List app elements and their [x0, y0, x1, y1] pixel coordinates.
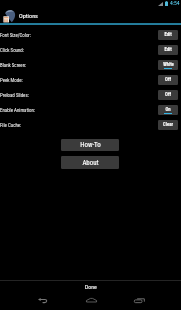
button[interactable]: Edit: [158, 30, 178, 40]
staticText: Click Sound:: [0, 47, 24, 53]
staticText: Options: [19, 12, 38, 19]
button[interactable]: Done: [0, 280, 181, 294]
staticText: Off: [165, 77, 171, 83]
staticText: About: [82, 159, 99, 167]
button[interactable]: Enable Animation:: [0, 102, 181, 117]
button[interactable]: Font Size/Color:: [0, 27, 181, 42]
button[interactable]: Edit: [158, 45, 178, 55]
staticText: Edit: [164, 32, 172, 38]
staticText: Done: [85, 284, 97, 291]
staticText: On: [165, 107, 171, 113]
button[interactable]: About: [61, 156, 119, 169]
staticText: How-To: [80, 141, 101, 149]
button[interactable]: File Cache:: [0, 117, 181, 132]
button[interactable]: Back: [32, 294, 52, 306]
staticText: 4:54: [170, 0, 180, 7]
button[interactable]: Preload Slides:: [0, 87, 181, 102]
button[interactable]: Click Sound:: [0, 42, 181, 57]
button[interactable]: White: [158, 60, 178, 70]
button[interactable]: Off: [158, 75, 178, 85]
staticText: Blank Screen:: [0, 62, 27, 68]
staticText: Enable Animation:: [0, 107, 35, 113]
staticText: Clear: [163, 122, 173, 128]
staticText: Off: [165, 92, 171, 98]
button[interactable]: Clear: [158, 120, 178, 130]
staticText: Peek Mode:: [0, 77, 23, 83]
staticText: Preload Slides:: [0, 92, 29, 98]
staticText: Edit: [164, 47, 172, 53]
button[interactable]: Blank Screen:: [0, 57, 181, 72]
button[interactable]: On: [158, 105, 178, 115]
button[interactable]: Recent apps: [129, 294, 149, 306]
button[interactable]: Off: [158, 90, 178, 100]
staticText: Font Size/Color:: [0, 32, 32, 38]
button[interactable]: Home: [81, 294, 101, 306]
staticText: White: [163, 62, 174, 68]
staticText: File Cache:: [0, 122, 22, 128]
button[interactable]: Peek Mode:: [0, 72, 181, 87]
button[interactable]: How-To: [61, 139, 119, 151]
